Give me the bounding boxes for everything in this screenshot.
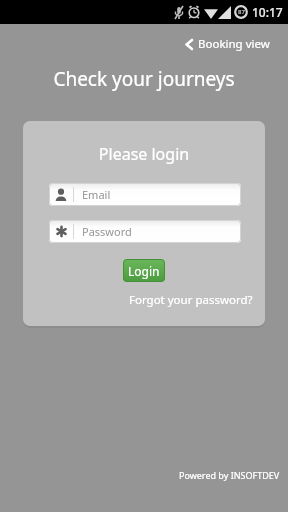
button[interactable]: Login — [123, 259, 165, 282]
staticText: 87 — [238, 8, 245, 16]
staticText: Forgot your password? — [129, 292, 253, 308]
button[interactable]: Booking view — [185, 36, 270, 52]
staticText: Login — [128, 263, 160, 279]
staticText: 10:17 — [252, 4, 283, 20]
button[interactable]: Forgot your password? — [129, 292, 253, 308]
staticText: Email — [82, 187, 111, 202]
button[interactable]: Password — [49, 220, 241, 243]
staticText: Password — [82, 224, 132, 239]
staticText: Powered by INSOFTDEV — [179, 469, 280, 481]
button[interactable]: Email — [49, 183, 241, 206]
staticText: Booking view — [198, 36, 270, 52]
staticText: Please login — [23, 143, 265, 165]
staticText: Check your journeys — [0, 66, 288, 92]
